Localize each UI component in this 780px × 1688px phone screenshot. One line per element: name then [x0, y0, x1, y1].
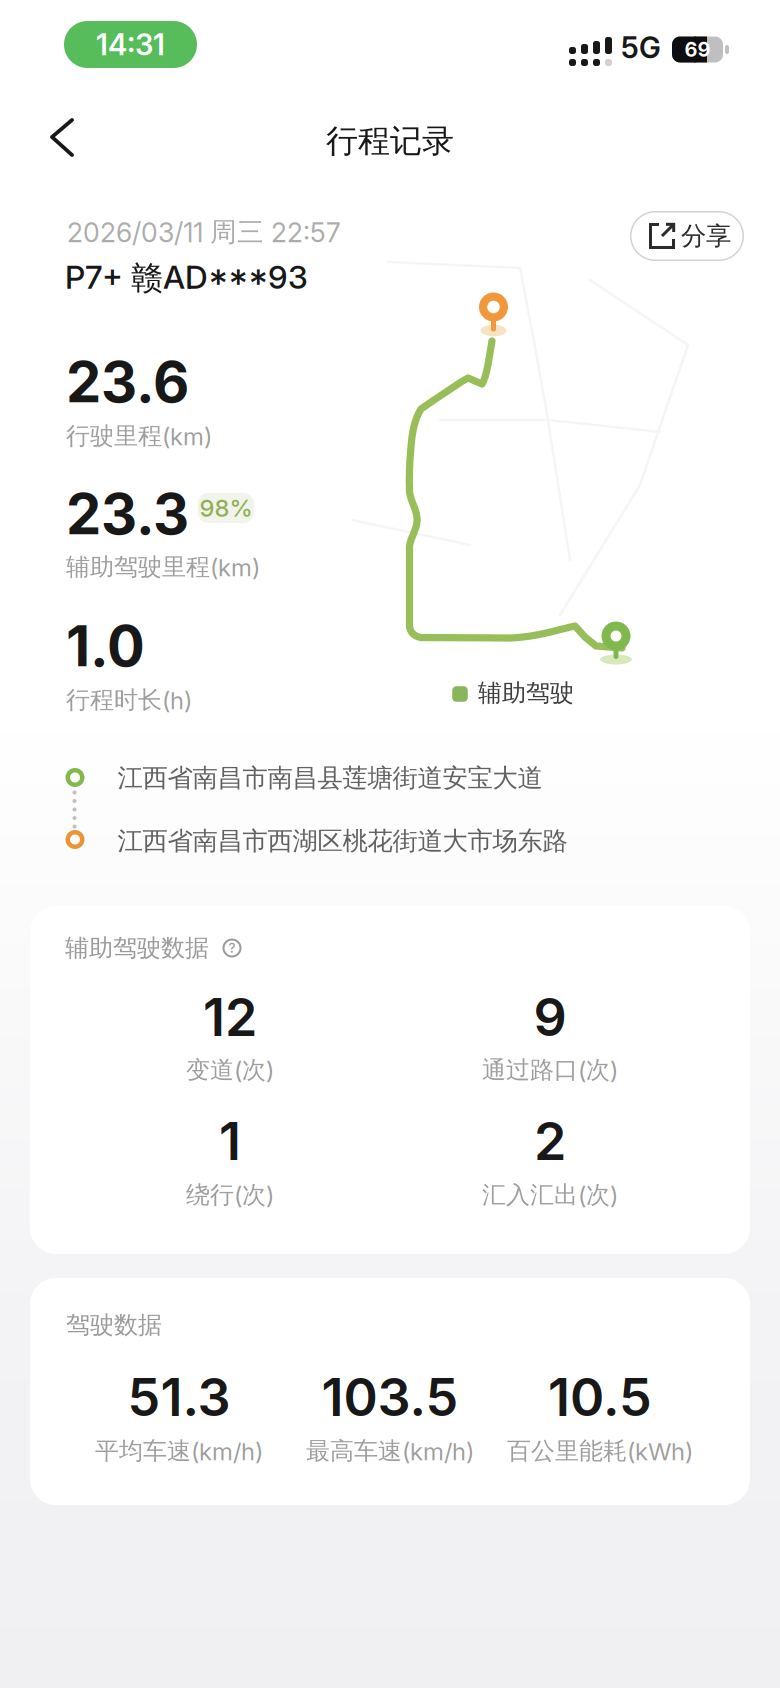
staticText: 通过路口(次)	[482, 1055, 618, 1085]
staticText: 辅助驾驶里程(km)	[66, 552, 260, 582]
staticText: 23.6	[66, 349, 189, 415]
staticText: P7+ 赣AD***93	[65, 258, 308, 298]
staticText: 变道(次)	[186, 1055, 274, 1085]
button[interactable]: Return to call	[64, 21, 197, 68]
button[interactable]: Back	[44, 117, 88, 161]
staticText: 绕行(次)	[186, 1180, 274, 1210]
staticText: 14:31	[96, 27, 165, 62]
staticText: 1.0	[66, 613, 145, 679]
staticText: 行程记录	[326, 121, 454, 161]
staticText: 9	[533, 986, 566, 1048]
staticText: 5G	[621, 30, 661, 65]
staticText: 2	[534, 1110, 566, 1172]
staticText: 分享	[681, 220, 731, 251]
staticText: 驾驶数据	[66, 1310, 162, 1340]
staticText: 10.5	[548, 1366, 652, 1428]
staticText: 12	[203, 986, 257, 1048]
staticText: 辅助驾驶数据	[65, 933, 209, 963]
staticText: 69	[684, 38, 710, 61]
staticText: 行程时长(h)	[66, 685, 192, 715]
staticText: 江西省南昌市西湖区桃花街道大市场东路	[117, 825, 567, 856]
staticText: 103.5	[321, 1366, 458, 1428]
button[interactable]: 分享	[630, 211, 744, 261]
staticText: 1	[219, 1110, 241, 1172]
staticText: 行驶里程(km)	[66, 421, 212, 451]
staticText: ?	[228, 940, 235, 956]
staticText: 98%	[199, 494, 252, 522]
staticText: 平均车速(km/h)	[95, 1436, 263, 1466]
button[interactable]: 辅助驾驶数据说明	[221, 937, 243, 959]
staticText: 辅助驾驶	[478, 678, 574, 708]
staticText: 汇入汇出(次)	[482, 1180, 618, 1210]
staticText: 51.3	[127, 1366, 230, 1428]
staticText: 百公里能耗(kWh)	[507, 1436, 693, 1466]
staticText: 最高车速(km/h)	[306, 1436, 474, 1466]
staticText: 2026/03/11 周三 22:57	[67, 216, 341, 248]
staticText: 江西省南昌市南昌县莲塘街道安宝大道	[117, 762, 542, 793]
staticText: 23.3	[66, 481, 189, 547]
